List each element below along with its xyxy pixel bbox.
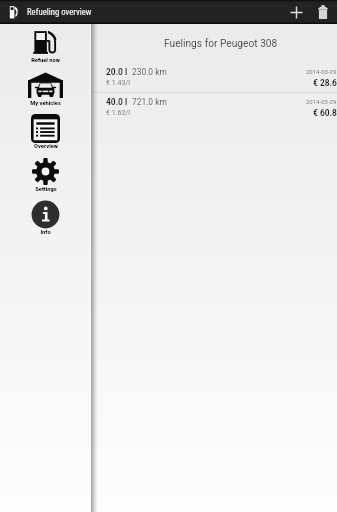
- staticText: € 28.6: [313, 78, 337, 88]
- staticText: 2014-03-29: [306, 68, 337, 75]
- staticText: Refuel now: [31, 57, 60, 64]
- staticText: Info: [40, 229, 51, 236]
- staticText: Overview: [34, 143, 58, 150]
- staticText: Settings: [35, 186, 57, 193]
- staticText: 230.0 km: [132, 67, 167, 77]
- button[interactable]: Info: [0, 199, 91, 242]
- staticText: € 1.43/l: [106, 79, 130, 87]
- button[interactable]: App icon: [6, 4, 22, 20]
- button[interactable]: 20.0 l: [91, 63, 337, 92]
- staticText: € 60.8: [313, 108, 337, 118]
- button[interactable]: 40.0 l: [91, 93, 337, 122]
- staticText: € 1.62/l: [106, 109, 130, 117]
- staticText: Fuelings for Peugeot 308: [164, 38, 278, 50]
- button[interactable]: Delete: [311, 0, 335, 24]
- staticText: My vehicles: [30, 100, 61, 107]
- staticText: 721.0 km: [132, 97, 167, 107]
- staticText: 2014-03-29: [306, 98, 337, 105]
- staticText: 20.0 l: [106, 67, 128, 77]
- button[interactable]: Overview: [0, 113, 91, 156]
- button[interactable]: My vehicles: [0, 70, 91, 113]
- button[interactable]: Settings: [0, 156, 91, 199]
- staticText: Refueling overview: [27, 7, 92, 17]
- button[interactable]: Add refueling: [284, 0, 308, 24]
- staticText: 40.0 l: [106, 97, 128, 107]
- button[interactable]: Refuel now: [0, 27, 91, 70]
